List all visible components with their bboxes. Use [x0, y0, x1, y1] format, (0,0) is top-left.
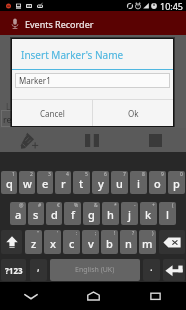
button[interactable]: ! — [101, 230, 118, 254]
staticText: c — [69, 236, 75, 251]
button[interactable]: Add marker — [10, 128, 46, 152]
staticText: w — [23, 176, 32, 191]
button[interactable]: 4 — [55, 171, 71, 194]
staticText: i — [137, 176, 140, 191]
staticText: o — [154, 176, 161, 191]
staticText: Marker1 — [19, 75, 51, 86]
button[interactable]: Pause — [72, 128, 112, 152]
staticText: g — [88, 207, 95, 222]
button[interactable]: Recent apps — [124, 282, 186, 310]
button[interactable]: ' — [44, 230, 61, 254]
button[interactable]: " — [25, 230, 42, 254]
staticText: s — [33, 207, 39, 222]
button[interactable]: Home — [62, 282, 124, 310]
button[interactable]: € — [46, 202, 62, 225]
staticText: 10:45 — [160, 0, 184, 11]
staticText: Cancel — [40, 108, 65, 119]
staticText: l — [166, 207, 169, 222]
staticText: r — [61, 176, 66, 191]
button[interactable]: , — [30, 259, 47, 281]
button[interactable]: 8 — [130, 171, 147, 194]
staticText: j — [128, 207, 131, 222]
staticText: z — [31, 236, 37, 251]
staticText: y — [98, 176, 104, 191]
staticText: p — [173, 176, 180, 191]
button[interactable]: 7 — [111, 171, 128, 194]
staticText: & — [94, 202, 98, 209]
button[interactable]: Enter — [163, 259, 185, 281]
button[interactable]: Shift — [1, 230, 22, 254]
button[interactable]: App icon — [0, 11, 186, 36]
staticText: 6 — [104, 171, 107, 178]
staticText: u — [116, 176, 123, 191]
button[interactable]: Marker1 — [15, 73, 170, 88]
staticText: " — [37, 230, 40, 237]
button[interactable]: Backspace — [159, 230, 185, 254]
staticText: 4 — [66, 171, 69, 178]
staticText: d — [51, 207, 58, 222]
button[interactable]: 1 — [1, 171, 17, 194]
staticText: . — [150, 260, 153, 274]
staticText: 1 — [12, 171, 15, 178]
button[interactable]: 5 — [73, 171, 90, 194]
staticText: 0 — [180, 171, 183, 178]
staticText: 3 — [48, 171, 51, 178]
button[interactable]: - — [121, 202, 138, 225]
button[interactable]: : — [63, 230, 80, 254]
button[interactable]: ; — [82, 230, 99, 254]
button[interactable]: 6 — [92, 171, 109, 194]
staticText: # — [38, 202, 42, 209]
staticText: € — [57, 202, 60, 209]
button[interactable]: * — [102, 202, 119, 225]
button[interactable]: ( — [159, 202, 176, 225]
staticText: + — [152, 202, 155, 209]
staticText: f — [71, 207, 75, 222]
staticText: Insert Marker's Name — [21, 48, 124, 62]
staticText: L — [6, 101, 11, 112]
staticText: q — [6, 176, 13, 191]
button[interactable]: Cancel — [12, 100, 92, 126]
staticText: 2 — [30, 171, 33, 178]
staticText: - — [134, 202, 136, 209]
button[interactable]: . — [143, 259, 160, 281]
button[interactable]: # — [28, 202, 44, 225]
staticText: % — [74, 202, 79, 209]
staticText: h — [107, 207, 114, 222]
staticText: , — [37, 260, 40, 274]
button[interactable]: % — [64, 202, 81, 225]
staticText: ( — [172, 202, 174, 209]
staticText: * — [114, 202, 117, 209]
button[interactable]: @ — [10, 202, 26, 225]
staticText: 5 — [85, 171, 88, 178]
button[interactable]: Stop — [135, 128, 175, 152]
button[interactable]: & — [83, 202, 100, 225]
staticText: k — [145, 207, 152, 222]
staticText: m — [142, 236, 153, 251]
staticText: Events Recorder — [25, 18, 94, 30]
button[interactable]: + — [140, 202, 157, 225]
button[interactable]: ?123 — [1, 259, 26, 281]
staticText: ' — [57, 230, 59, 237]
button[interactable]: 2 — [19, 171, 35, 194]
staticText: n — [125, 236, 132, 251]
button[interactable]: Ok — [93, 100, 173, 126]
staticText: 9 — [161, 171, 164, 178]
staticText: e — [42, 176, 49, 191]
button[interactable]: 0 — [168, 171, 185, 194]
button[interactable]: 3 — [37, 171, 53, 194]
button[interactable]: ? — [120, 230, 137, 254]
button[interactable]: ) — [139, 230, 156, 254]
staticText: ? — [132, 230, 135, 237]
button[interactable]: Hide keyboard — [0, 282, 62, 310]
staticText: ! — [114, 230, 116, 237]
staticText: ; — [95, 230, 97, 237]
button[interactable]: English (UK) — [50, 259, 140, 281]
staticText: a — [15, 207, 22, 222]
staticText: b — [106, 236, 113, 251]
staticText: Ok — [128, 108, 139, 119]
staticText: : — [76, 230, 78, 237]
button[interactable]: 9 — [149, 171, 166, 194]
staticText: 8 — [142, 171, 145, 178]
staticText: ?123 — [5, 265, 23, 276]
staticText: ) — [152, 230, 154, 237]
